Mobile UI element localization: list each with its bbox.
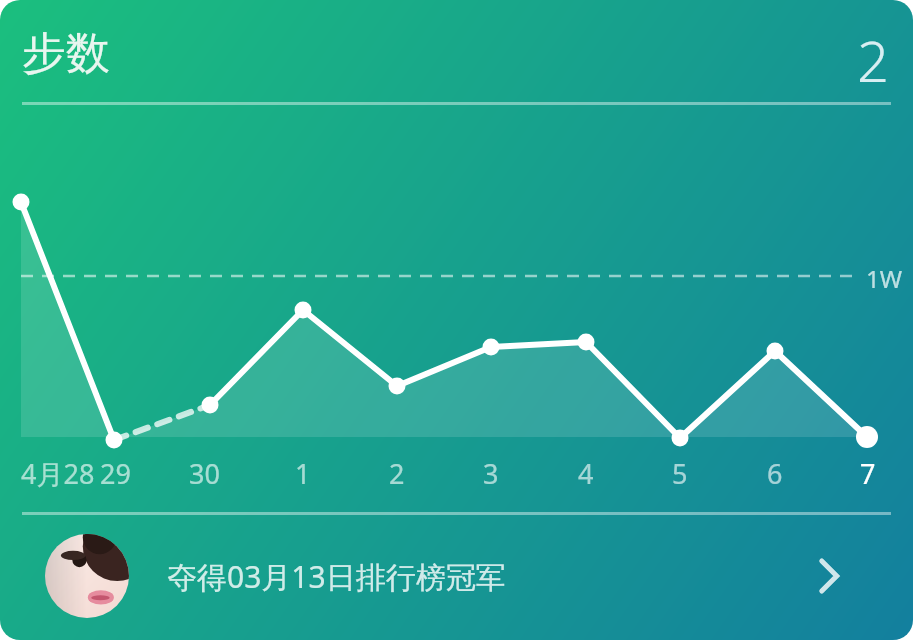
button[interactable]: 夺得03月13日排行榜冠军 [0, 0, 913, 640]
button[interactable]: 夺得03月13日排行榜冠军 [0, 515, 913, 640]
